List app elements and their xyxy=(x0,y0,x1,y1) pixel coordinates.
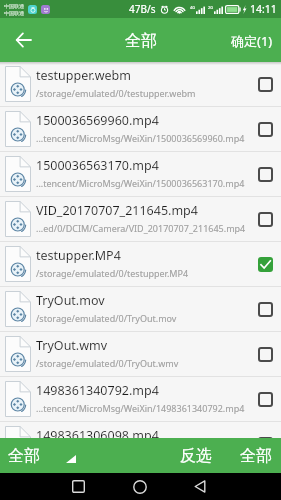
button[interactable]: 全部 xyxy=(230,438,281,473)
button[interactable]: 1498361306098.mp4 xyxy=(0,422,281,438)
button[interactable]: testupper.MP4 xyxy=(0,242,281,287)
staticText: 2G xyxy=(208,5,214,10)
staticText: testupper.MP4 xyxy=(36,247,121,264)
staticText: VID_20170707_211645.mp4 xyxy=(36,202,198,219)
button[interactable]: Recents xyxy=(63,473,94,500)
button[interactable]: 全部 xyxy=(0,440,82,472)
button[interactable]: Select file xyxy=(254,253,276,275)
staticText: 全部 xyxy=(8,446,40,466)
button[interactable]: Back xyxy=(3,20,43,60)
staticText: /storage/emulated/0/testupper.MP4 xyxy=(36,267,189,279)
button[interactable]: Select file xyxy=(254,73,276,95)
staticText: 47B/s xyxy=(129,2,156,16)
button[interactable]: 1500036563170.mp4 xyxy=(0,152,281,197)
staticText: 反选 xyxy=(180,446,212,465)
staticText: 确定(1) xyxy=(231,32,273,50)
staticText: 全部 xyxy=(240,446,272,465)
staticText: TryOut.mov xyxy=(36,292,105,309)
staticText: ...tencent/MicroMsg/WeiXin/1500036569960… xyxy=(36,132,245,144)
button[interactable]: Select file xyxy=(254,298,276,320)
staticText: ...tencent/MicroMsg/WeiXin/1498361340792… xyxy=(36,402,245,414)
button[interactable]: TryOut.mov xyxy=(0,287,281,332)
staticText: 中国联通 xyxy=(4,3,24,9)
button[interactable]: TryOut.wmv xyxy=(0,332,281,377)
button[interactable]: Select file xyxy=(254,343,276,365)
button[interactable]: VID_20170707_211645.mp4 xyxy=(0,197,281,242)
button[interactable]: Select file xyxy=(254,208,276,230)
staticText: ...tencent/MicroMsg/WeiXin/1500036563170… xyxy=(36,177,245,189)
staticText: 4G xyxy=(190,5,196,10)
button[interactable]: Home xyxy=(124,473,155,500)
button[interactable]: 1500036569960.mp4 xyxy=(0,107,281,152)
staticText: 1498361340792.mp4 xyxy=(36,382,159,399)
button[interactable]: Select file xyxy=(254,433,276,438)
button[interactable]: 确定(1) xyxy=(219,21,281,59)
button[interactable]: Back xyxy=(184,473,215,500)
staticText: 14:11 xyxy=(250,2,277,16)
button[interactable]: 反选 xyxy=(170,438,222,473)
button[interactable]: Select file xyxy=(254,118,276,140)
button[interactable]: Select file xyxy=(254,163,276,185)
staticText: 中国联通 xyxy=(4,10,24,16)
staticText: /storage/emulated/0/testupper.webm xyxy=(36,87,196,99)
button[interactable]: testupper.webm xyxy=(0,62,281,107)
staticText: ...ed/0/DCIM/Camera/VID_20170707_211645.… xyxy=(36,222,246,234)
button[interactable]: Select file xyxy=(254,388,276,410)
staticText: 1500036569960.mp4 xyxy=(36,112,159,129)
staticText: 全部 xyxy=(125,31,157,51)
staticText: /storage/emulated/0/TryOut.mov xyxy=(36,312,177,324)
staticText: testupper.webm xyxy=(36,67,131,84)
staticText: 1498361306098.mp4 xyxy=(36,427,159,438)
staticText: 1500036563170.mp4 xyxy=(36,157,159,174)
button[interactable]: 1498361340792.mp4 xyxy=(0,377,281,422)
staticText: /storage/emulated/0/TryOut.wmv xyxy=(36,357,179,369)
staticText: TryOut.wmv xyxy=(36,337,108,354)
